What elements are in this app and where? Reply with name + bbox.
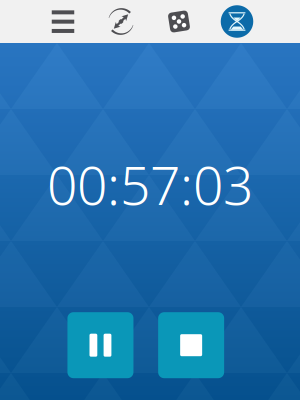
button[interactable]: Pause [67, 312, 133, 378]
staticText: 00:57:03 [47, 149, 253, 220]
button[interactable]: Stopwatch [92, 0, 150, 43]
button[interactable]: Timer [208, 0, 266, 43]
button[interactable]: Stop [158, 312, 224, 378]
button[interactable]: Menu [34, 0, 92, 43]
button[interactable]: Random [150, 0, 208, 43]
